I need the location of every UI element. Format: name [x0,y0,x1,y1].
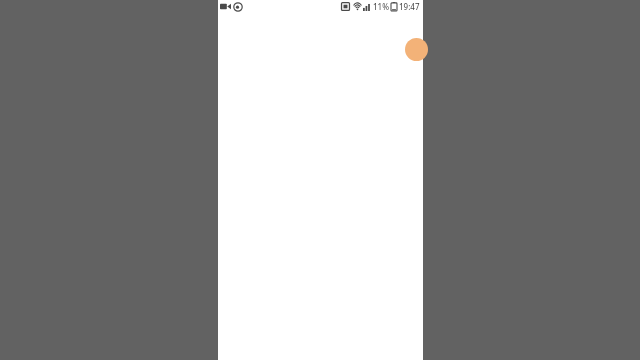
staticText: 19:47 [399,1,420,12]
button[interactable]: Floating bubble [405,38,428,61]
button[interactable]: Screen recorder [220,1,231,12]
button[interactable]: Notification [233,2,243,12]
staticText: 11% [373,1,389,12]
